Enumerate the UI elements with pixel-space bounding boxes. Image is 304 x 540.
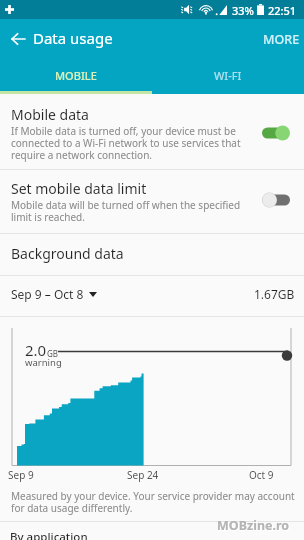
staticText: Sep 9 – Oct 8 [11, 286, 84, 302]
button[interactable]: MORE [259, 21, 304, 58]
staticText: MOBzine.ro [218, 518, 291, 535]
staticText: Data usage [33, 28, 113, 48]
staticText: If Mobile data is turned off, your devic… [11, 124, 251, 162]
staticText: GB [47, 348, 59, 359]
staticText: Mobile data [11, 105, 89, 124]
button[interactable]: Mobile data toggle [261, 125, 290, 141]
staticText: MOBzine.ro [217, 517, 290, 534]
staticText: Measured by your device. Your service pr… [11, 489, 297, 515]
staticText: WI-FI [214, 68, 242, 83]
staticText: MORE [263, 31, 300, 48]
button[interactable]: Sep 9 – Oct 8 [11, 274, 97, 314]
staticText: Sep 24 [127, 468, 159, 482]
staticText: 22:51 [268, 3, 297, 18]
button[interactable]: WI-FI [152, 56, 304, 94]
staticText: Oct 9 [249, 468, 274, 482]
button[interactable] [0, 522, 304, 540]
staticText: 2.0 [25, 340, 47, 360]
button[interactable] [0, 234, 304, 275]
staticText: Set mobile data limit [11, 179, 147, 198]
staticText: Mobile data will be turned off when the … [11, 198, 251, 224]
button[interactable]: Navigate up [0, 19, 33, 56]
button[interactable] [0, 95, 304, 169]
staticText: warning [25, 356, 62, 369]
staticText: By application [10, 529, 88, 540]
staticText: Sep 9 [8, 468, 34, 482]
button[interactable]: MOBILE [0, 56, 152, 94]
staticText: Background data [11, 244, 124, 263]
button[interactable]: Data limit toggle [262, 192, 291, 208]
staticText: 1.67GB [254, 286, 295, 302]
staticText: MOBILE [55, 68, 97, 83]
button[interactable] [0, 170, 304, 233]
staticText: 33% [232, 3, 254, 18]
